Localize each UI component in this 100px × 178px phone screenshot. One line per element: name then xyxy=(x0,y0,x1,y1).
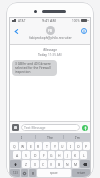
button[interactable]: Key xyxy=(10,169,20,177)
button[interactable]: Key xyxy=(10,160,21,168)
button[interactable]: The xyxy=(36,133,63,141)
staticText: T xyxy=(46,144,48,149)
staticText: fabiprokoph@philo.recruiter xyxy=(29,36,72,40)
staticText: 3 GB/hr and 40 Gb were selected for the … xyxy=(15,62,54,74)
staticText: J xyxy=(67,153,68,158)
staticText: V xyxy=(50,162,53,167)
button[interactable]: V xyxy=(48,160,55,168)
staticText: N xyxy=(66,162,69,167)
button[interactable]: Y xyxy=(51,142,58,150)
button[interactable]: M xyxy=(72,160,79,168)
staticText: iMessage xyxy=(9,48,91,52)
staticText: R xyxy=(37,144,40,149)
button[interactable]: B xyxy=(56,160,63,168)
staticText: I'm xyxy=(75,135,80,140)
button[interactable]: I xyxy=(9,133,35,141)
staticText: I xyxy=(21,135,23,140)
button[interactable]: E xyxy=(27,142,34,150)
button[interactable]: Send xyxy=(82,125,88,131)
staticText: P xyxy=(85,144,88,149)
button[interactable]: T xyxy=(43,142,50,150)
staticText: AT&T xyxy=(18,19,26,23)
button[interactable]: I'm xyxy=(64,133,91,141)
button[interactable]: U xyxy=(59,142,66,150)
staticText: 11:35 AM xyxy=(48,53,62,57)
button[interactable]: 3 GB/hr and 40 Gb were selected for the … xyxy=(12,60,57,76)
button[interactable]: Key xyxy=(21,169,28,177)
button[interactable]: R xyxy=(35,142,42,150)
staticText: L xyxy=(83,153,85,158)
button[interactable]: Details xyxy=(79,26,89,36)
button[interactable]: W xyxy=(19,142,26,150)
button[interactable]: Key xyxy=(29,169,36,177)
button[interactable]: O xyxy=(75,142,82,150)
staticText: X xyxy=(34,162,36,167)
staticText: O xyxy=(77,144,80,149)
button[interactable]: Q xyxy=(10,142,18,150)
button[interactable]: X xyxy=(31,160,39,168)
button[interactable]: S xyxy=(22,151,30,159)
button[interactable]: L xyxy=(80,151,87,159)
staticText: F xyxy=(43,153,45,158)
staticText: Text Message xyxy=(24,125,46,130)
button[interactable]: I xyxy=(67,142,74,150)
staticText: A xyxy=(16,153,19,158)
staticText: I xyxy=(70,144,72,149)
button[interactable]: H xyxy=(56,151,63,159)
staticText: U xyxy=(61,144,64,149)
button[interactable]: N xyxy=(64,160,71,168)
staticText: S xyxy=(25,153,27,158)
staticText: K xyxy=(74,153,77,158)
button[interactable]: A xyxy=(13,151,21,159)
staticText: E xyxy=(30,144,32,149)
staticText: FB xyxy=(48,28,53,33)
button[interactable]: Back xyxy=(11,26,21,36)
staticText: The xyxy=(47,135,53,140)
staticText: M xyxy=(74,162,78,167)
staticText: G xyxy=(50,153,53,158)
staticText: Y xyxy=(54,144,56,149)
button[interactable]: F xyxy=(40,151,47,159)
staticText: 9:41 AM xyxy=(42,18,56,23)
button[interactable]: FB xyxy=(29,26,72,40)
staticText: space xyxy=(50,171,58,175)
staticText: Q xyxy=(13,144,16,149)
staticText: H xyxy=(58,153,61,158)
button[interactable]: Text Message xyxy=(21,124,80,131)
button[interactable]: D xyxy=(31,151,39,159)
button[interactable]: space xyxy=(37,169,71,177)
button[interactable]: Z xyxy=(22,160,30,168)
button[interactable]: return xyxy=(72,169,90,177)
staticText: 100% xyxy=(72,19,80,23)
button[interactable]: Apps xyxy=(12,124,19,131)
staticText: Z xyxy=(25,162,27,167)
staticText: C xyxy=(42,162,45,167)
button[interactable]: P xyxy=(83,142,90,150)
button[interactable]: C xyxy=(40,160,47,168)
button[interactable]: G xyxy=(48,151,55,159)
staticText: W xyxy=(21,144,25,149)
button[interactable]: K xyxy=(72,151,79,159)
staticText: B xyxy=(58,162,61,167)
button[interactable]: J xyxy=(64,151,71,159)
staticText: 123 xyxy=(13,171,18,175)
staticText: return xyxy=(77,171,86,175)
staticText: Today xyxy=(38,53,48,57)
button[interactable]: Key xyxy=(80,160,90,168)
staticText: D xyxy=(34,153,37,158)
